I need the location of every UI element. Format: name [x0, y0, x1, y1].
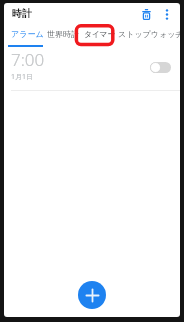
button[interactable]: 世界時計 [47, 29, 79, 39]
button[interactable] [160, 7, 174, 21]
staticText: ストップウォッチ [118, 29, 180, 39]
staticText: アラーム [11, 29, 44, 39]
button[interactable] [150, 62, 171, 73]
staticText: タイマー [84, 29, 115, 39]
button[interactable] [138, 6, 154, 22]
staticText: 1月1日 [11, 72, 34, 82]
button[interactable]: 7:00 [4, 47, 180, 90]
staticText: 7:00 [11, 48, 45, 71]
button[interactable]: アラーム [11, 29, 44, 39]
button[interactable]: タイマー [84, 29, 115, 39]
button[interactable] [78, 281, 106, 309]
button[interactable]: 時計 [12, 7, 32, 20]
button[interactable]: ストップウォッチ [118, 29, 180, 39]
staticText: 時計 [12, 7, 32, 20]
staticText: 世界時計 [47, 29, 79, 39]
